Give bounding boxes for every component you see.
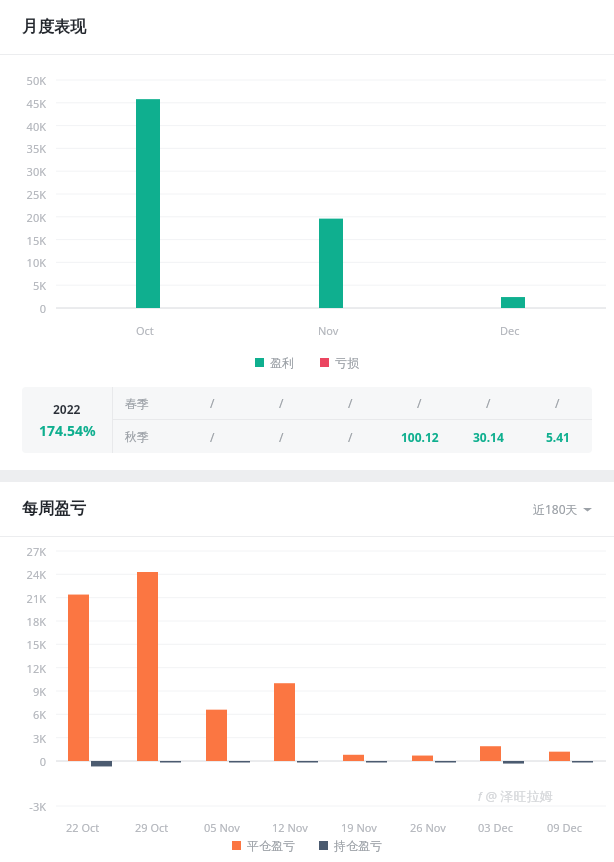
staticText: 19 Nov [341,820,377,835]
staticText: 15K [0,233,46,248]
staticText: 26 Nov [410,820,446,835]
staticText: 盈利 [270,355,294,370]
button[interactable]: 每周盈亏 [22,499,86,519]
staticText: 12K [0,661,46,676]
staticText: / [279,429,284,445]
staticText: 持仓盈亏 [334,838,382,853]
staticText: 25K [0,187,46,202]
staticText: 近180天 [533,501,578,517]
staticText: 平仓盈亏 [247,838,295,853]
staticText: 29 Oct [135,820,169,835]
staticText: 5.41 [546,429,570,445]
staticText: / [555,395,560,411]
staticText: 6K [0,707,46,722]
staticText: 27K [0,544,46,559]
staticText: / [279,395,284,411]
button[interactable]: 月度表现 [0,0,614,54]
staticText: 0 [0,754,46,769]
staticText: / [348,429,353,445]
staticText: / [210,395,215,411]
staticText: / [210,429,215,445]
staticText: 12 Nov [272,820,308,835]
staticText: 50K [0,73,46,88]
staticText: 20K [0,210,46,225]
button[interactable]: 春季 [113,387,592,419]
staticText: Oct [136,323,154,338]
staticText: 9K [0,684,46,699]
staticText: 2022 [53,401,81,417]
staticText: / [348,395,353,411]
staticText: 100.12 [401,429,439,445]
staticText: 𝑓 @ 泽旺拉姆 [478,787,553,805]
staticText: 0 [0,301,46,316]
staticText: 30.14 [473,429,504,445]
staticText: 5K [0,278,46,293]
staticText: 22 Oct [66,820,100,835]
staticText: 10K [0,255,46,270]
staticText: 15K [0,637,46,652]
staticText: 30K [0,164,46,179]
staticText: 月度表现 [22,17,86,37]
staticText: 35K [0,141,46,156]
staticText: Nov [318,323,339,338]
staticText: Dec [500,323,520,338]
staticText: 春季 [125,396,177,411]
staticText: 05 Nov [204,820,240,835]
staticText: 秋季 [125,429,177,444]
staticText: / [417,395,422,411]
staticText: -3K [0,799,46,814]
staticText: 18K [0,614,46,629]
staticText: 21K [0,591,46,606]
staticText: 24K [0,567,46,582]
button[interactable]: 平仓盈亏 [232,838,295,853]
button[interactable]: 选择时间范围 近180天 [533,501,592,517]
staticText: 09 Dec [547,820,582,835]
button[interactable]: 亏损 [320,355,359,370]
staticText: 174.54% [39,421,96,440]
button[interactable]: 秋季 [113,420,592,453]
button[interactable]: 持仓盈亏 [319,838,382,853]
staticText: 45K [0,96,46,111]
staticText: 03 Dec [478,820,513,835]
staticText: / [486,395,491,411]
staticText: 亏损 [335,355,359,370]
staticText: 40K [0,119,46,134]
button[interactable]: 2022 [22,387,112,453]
staticText: 3K [0,731,46,746]
button[interactable]: 盈利 [255,355,294,370]
